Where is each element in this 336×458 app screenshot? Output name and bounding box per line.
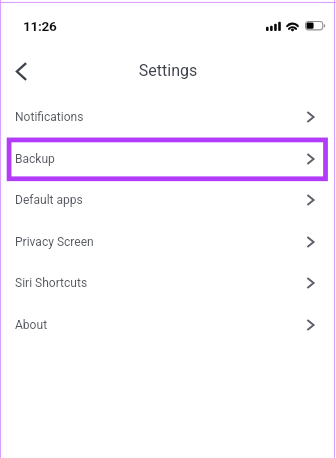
button[interactable]: Notifications (0, 96, 336, 137)
button[interactable]: Siri Shortcuts (0, 262, 336, 303)
staticText: Privacy Screen (15, 235, 94, 249)
button[interactable]: Back (2, 52, 40, 90)
staticText: 11:26 (23, 18, 57, 34)
staticText: About (15, 318, 48, 332)
button[interactable]: About (0, 304, 336, 345)
staticText: Settings (0, 61, 336, 80)
staticText: Backup (15, 152, 55, 166)
button[interactable]: Default apps (0, 179, 336, 220)
staticText: Siri Shortcuts (15, 276, 88, 290)
button[interactable]: Privacy Screen (0, 221, 336, 262)
staticText: Notifications (15, 110, 84, 124)
button[interactable]: Backup (0, 138, 336, 179)
staticText: Default apps (15, 193, 83, 207)
